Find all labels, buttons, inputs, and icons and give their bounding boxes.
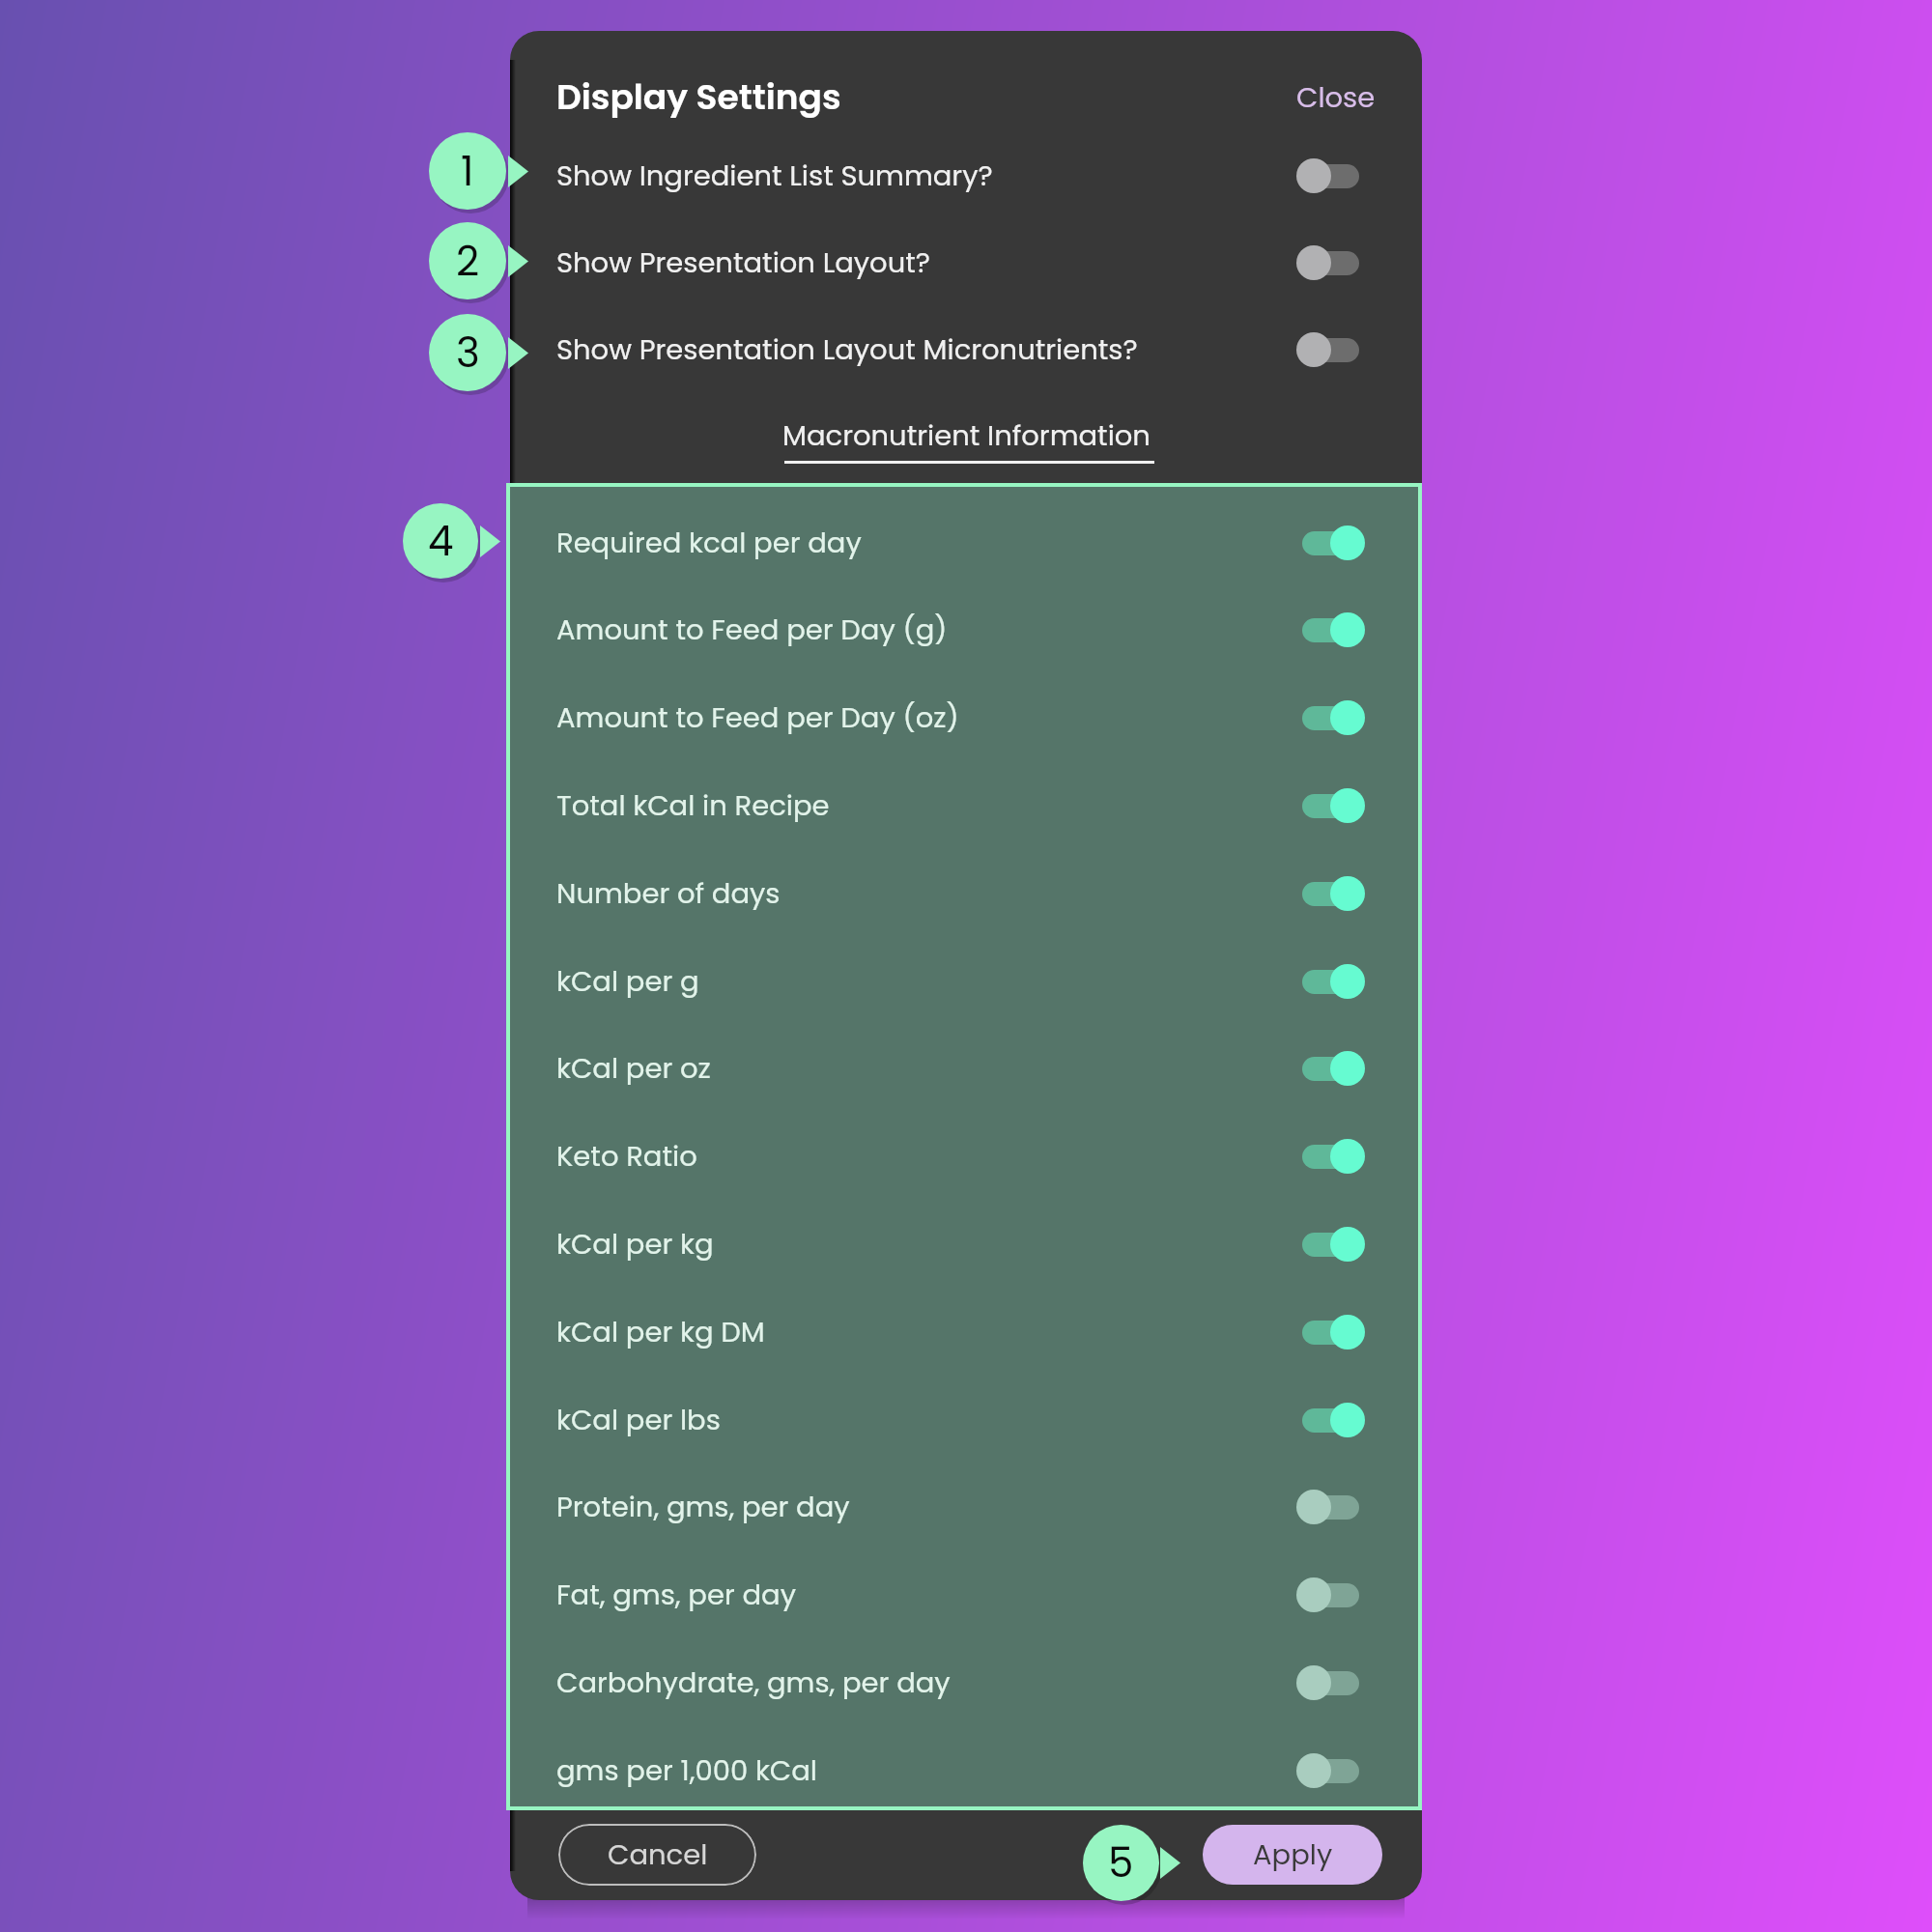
button[interactable]: Carbohydrate, gms, per day bbox=[510, 1639, 1418, 1726]
button[interactable]: Toggle gms per 1,000 kCal bbox=[1296, 1751, 1365, 1790]
button[interactable]: Toggle Protein, gms, per day bbox=[1296, 1488, 1365, 1526]
staticText: 4 bbox=[428, 513, 454, 570]
button[interactable]: Toggle kCal per oz bbox=[1296, 1049, 1365, 1088]
staticText: 3 bbox=[456, 325, 480, 382]
button[interactable]: kCal per lbs bbox=[510, 1377, 1418, 1463]
staticText: Keto Ratio bbox=[556, 1137, 697, 1177]
button[interactable]: Cancel bbox=[558, 1824, 756, 1886]
button[interactable]: Show Presentation Layout? bbox=[510, 219, 1422, 306]
button[interactable]: Toggle kCal per kg DM bbox=[1296, 1313, 1365, 1351]
staticText: gms per 1,000 kCal bbox=[556, 1751, 817, 1791]
button[interactable]: Close bbox=[1289, 72, 1383, 124]
staticText: kCal per g bbox=[556, 962, 699, 1002]
button[interactable]: Toggle Show Presentation Layout Micronut… bbox=[1296, 330, 1365, 369]
staticText: kCal per kg DM bbox=[556, 1313, 765, 1352]
button[interactable]: Toggle Total kCal in Recipe bbox=[1296, 786, 1365, 825]
button[interactable]: Show Ingredient List Summary? bbox=[510, 132, 1422, 219]
button[interactable]: Protein, gms, per day bbox=[510, 1463, 1418, 1550]
button[interactable]: gms per 1,000 kCal bbox=[510, 1727, 1418, 1814]
button[interactable]: Amount to Feed per Day (g) bbox=[510, 586, 1418, 673]
button[interactable]: Show Presentation Layout Micronutrients? bbox=[510, 306, 1422, 393]
staticText: Fat, gms, per day bbox=[556, 1576, 797, 1615]
button[interactable]: Toggle Amount to Feed per Day (oz) bbox=[1296, 698, 1365, 737]
staticText: Total kCal in Recipe bbox=[556, 786, 830, 826]
button[interactable]: Toggle Fat, gms, per day bbox=[1296, 1576, 1365, 1614]
staticText: Carbohydrate, gms, per day bbox=[556, 1663, 951, 1703]
staticText: kCal per lbs bbox=[556, 1401, 721, 1440]
button[interactable]: Toggle Required kcal per day bbox=[1296, 524, 1365, 562]
staticText: Protein, gms, per day bbox=[556, 1488, 850, 1527]
staticText: 5 bbox=[1108, 1834, 1134, 1891]
button[interactable]: Apply bbox=[1203, 1825, 1382, 1885]
button[interactable]: kCal per kg bbox=[510, 1201, 1418, 1288]
button[interactable]: Number of days bbox=[510, 850, 1418, 937]
staticText: Number of days bbox=[556, 874, 781, 914]
button[interactable]: kCal per g bbox=[510, 938, 1418, 1025]
staticText: Display Settings bbox=[556, 72, 841, 121]
staticText: Cancel bbox=[608, 1835, 708, 1875]
button[interactable]: Keto Ratio bbox=[510, 1113, 1418, 1200]
button[interactable]: kCal per oz bbox=[510, 1025, 1418, 1112]
staticText: Required kcal per day bbox=[556, 524, 862, 563]
staticText: Macronutrient Information bbox=[782, 416, 1151, 456]
staticText: Show Ingredient List Summary? bbox=[556, 156, 993, 196]
staticText: Show Presentation Layout? bbox=[556, 243, 930, 283]
staticText: kCal per oz bbox=[556, 1049, 711, 1089]
button[interactable]: Toggle kCal per g bbox=[1296, 962, 1365, 1001]
button[interactable]: Toggle Show Presentation Layout? bbox=[1296, 243, 1365, 282]
button[interactable]: kCal per kg DM bbox=[510, 1289, 1418, 1376]
button[interactable]: Toggle kCal per kg bbox=[1296, 1225, 1365, 1264]
button[interactable]: Fat, gms, per day bbox=[510, 1551, 1418, 1638]
staticText: kCal per kg bbox=[556, 1225, 714, 1264]
staticText: Amount to Feed per Day (g) bbox=[556, 611, 948, 650]
staticText: Apply bbox=[1253, 1835, 1333, 1875]
staticText: 1 bbox=[461, 143, 474, 200]
staticText: 2 bbox=[456, 233, 480, 290]
button[interactable]: Toggle Show Ingredient List Summary? bbox=[1296, 156, 1365, 195]
button[interactable]: Toggle kCal per lbs bbox=[1296, 1401, 1365, 1439]
button[interactable]: Amount to Feed per Day (oz) bbox=[510, 674, 1418, 761]
staticText: Show Presentation Layout Micronutrients? bbox=[556, 330, 1138, 370]
staticText: Close bbox=[1296, 78, 1376, 118]
button[interactable]: Toggle Carbohydrate, gms, per day bbox=[1296, 1663, 1365, 1702]
staticText: Amount to Feed per Day (oz) bbox=[556, 698, 959, 738]
button[interactable]: Toggle Keto Ratio bbox=[1296, 1137, 1365, 1176]
button[interactable]: Total kCal in Recipe bbox=[510, 762, 1418, 849]
button[interactable]: Toggle Amount to Feed per Day (g) bbox=[1296, 611, 1365, 649]
button[interactable]: Toggle Number of days bbox=[1296, 874, 1365, 913]
button[interactable]: Required kcal per day bbox=[510, 499, 1418, 586]
